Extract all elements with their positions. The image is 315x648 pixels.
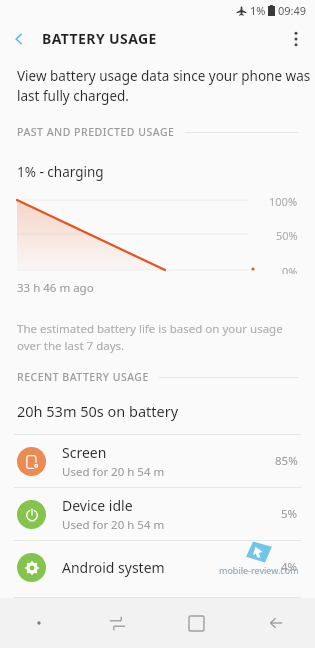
- button[interactable]: Back: [0, 20, 38, 57]
- staticText: BATTERY USAGE: [42, 29, 157, 48]
- staticText: 09:49: [278, 3, 307, 18]
- staticText: 100%: [269, 194, 298, 209]
- button[interactable]: Android system: [0, 541, 315, 593]
- staticText: 33 h 46 m ago: [17, 280, 94, 296]
- staticText: RECENT BATTERY USAGE: [17, 370, 149, 384]
- staticText: Used for 20 h 54 m: [62, 464, 165, 480]
- staticText: 1% - charging: [17, 163, 104, 181]
- staticText: 1%: [250, 3, 266, 18]
- button[interactable]: More options: [277, 20, 315, 57]
- button[interactable]: Recents: [78, 598, 157, 648]
- button[interactable]: Indicator: [0, 598, 78, 648]
- staticText: Screen: [62, 443, 107, 462]
- staticText: Device idle: [62, 496, 133, 515]
- staticText: 0%: [282, 264, 298, 274]
- button[interactable]: Device idle: [0, 488, 315, 540]
- staticText: Android system: [62, 558, 165, 577]
- button[interactable]: Home: [157, 598, 236, 648]
- staticText: The estimated battery life is based on y…: [17, 321, 283, 353]
- staticText: 85%: [275, 453, 298, 469]
- staticText: mobile-review.com: [219, 564, 299, 576]
- staticText: 50%: [276, 228, 298, 243]
- staticText: PAST AND PREDICTED USAGE: [17, 125, 175, 139]
- staticText: Used for 20 h 54 m: [62, 517, 165, 533]
- button[interactable]: Screen: [0, 435, 315, 487]
- staticText: 20h 53m 50s on battery: [17, 401, 179, 421]
- staticText: 5%: [281, 506, 298, 522]
- button[interactable]: Back: [236, 598, 315, 648]
- staticText: View battery usage data since your phone…: [17, 67, 311, 105]
- staticText: 4%: [281, 559, 298, 575]
